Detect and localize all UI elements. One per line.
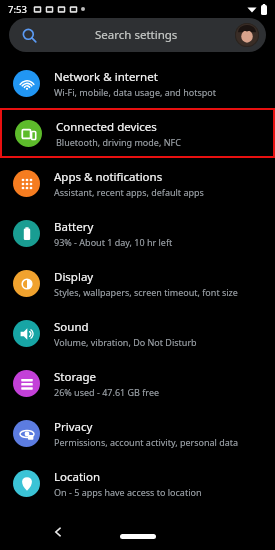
staticText: On - 5 apps have access to location <box>54 486 202 498</box>
staticText: Sound <box>54 319 89 335</box>
staticText: Battery <box>54 219 94 235</box>
button[interactable]: Connected devices <box>2 110 273 156</box>
staticText: Network & internet <box>54 69 158 85</box>
staticText: Display <box>54 269 94 285</box>
staticText: 26% used - 47.61 GB free <box>54 386 160 398</box>
staticText: Bluetooth, driving mode, NFC <box>56 136 181 148</box>
staticText: Location <box>54 469 101 485</box>
button[interactable]: Privacy <box>0 408 275 458</box>
staticText: Styles, wallpapers, screen timeout, font… <box>54 286 238 298</box>
button[interactable]: Apps & notifications <box>0 158 275 208</box>
staticText: 7:53 <box>8 3 27 16</box>
staticText: 93% - About 1 day, 10 hr left <box>54 236 173 248</box>
staticText: Storage <box>54 369 96 385</box>
button[interactable]: Account <box>235 23 259 47</box>
staticText: Connected devices <box>56 119 157 135</box>
button[interactable]: Location <box>0 458 275 508</box>
staticText: Apps & notifications <box>54 169 163 185</box>
button[interactable]: Display <box>0 258 275 308</box>
button[interactable]: Search <box>9 18 266 52</box>
button[interactable]: Sound <box>0 308 275 358</box>
staticText: Assistant, recent apps, default apps <box>54 186 204 198</box>
button[interactable]: Network & internet <box>0 58 275 108</box>
staticText: Privacy <box>54 419 93 435</box>
staticText: Volume, vibration, Do Not Disturb <box>54 336 197 348</box>
staticText: Wi-Fi, mobile, data usage, and hotspot <box>54 86 216 98</box>
button[interactable]: Storage <box>0 358 275 408</box>
staticText: Security <box>54 521 98 537</box>
button[interactable]: Home <box>120 534 156 539</box>
staticText: Search settings <box>95 27 178 43</box>
staticText: Permissions, account activity, personal … <box>54 436 239 448</box>
button[interactable]: Back <box>52 526 64 538</box>
other: Search <box>22 28 37 43</box>
button[interactable]: Battery <box>0 208 275 258</box>
button[interactable]: Security <box>0 508 275 550</box>
